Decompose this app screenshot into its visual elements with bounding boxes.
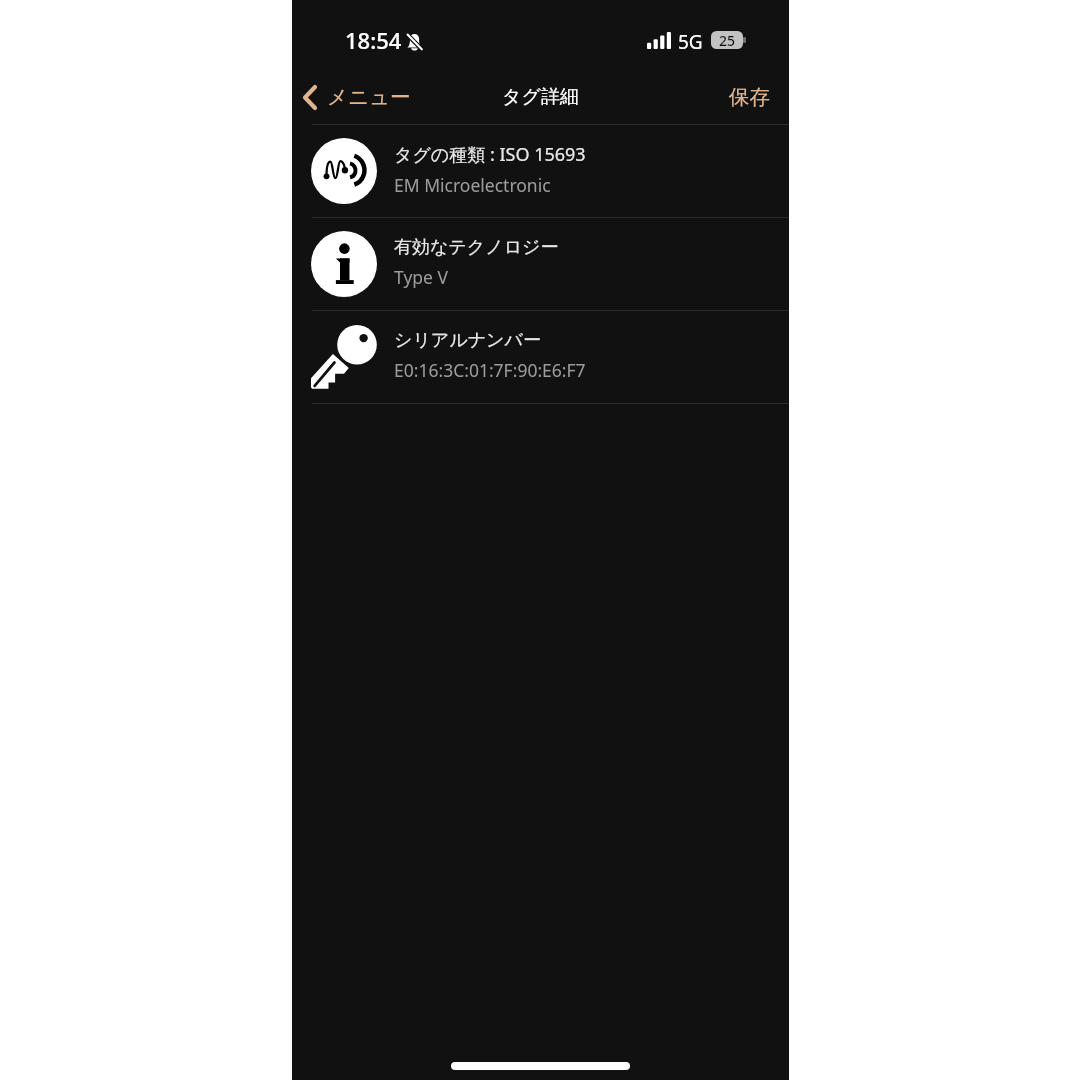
staticText: 25: [719, 31, 736, 49]
staticText: 18:54: [345, 25, 402, 55]
staticText: Type V: [394, 265, 448, 289]
staticText: 5G: [678, 29, 703, 55]
staticText: シリアルナンバー: [394, 329, 541, 352]
button[interactable]: Tag type: [292, 125, 789, 217]
button[interactable]: Serial number: [292, 311, 789, 403]
staticText: 有効なテクノロジー: [394, 236, 559, 259]
staticText: 保存: [729, 84, 770, 110]
button[interactable]: Available technology: [292, 218, 789, 310]
staticText: タグの種類 : ISO 15693: [394, 142, 586, 167]
button[interactable]: メニュー: [292, 78, 421, 116]
staticText: タグ詳細: [502, 85, 579, 109]
staticText: EM Microelectronic: [394, 173, 551, 197]
staticText: メニュー: [327, 84, 411, 110]
button[interactable]: 保存: [709, 76, 789, 118]
staticText: E0:16:3C:01:7F:90:E6:F7: [394, 358, 586, 382]
